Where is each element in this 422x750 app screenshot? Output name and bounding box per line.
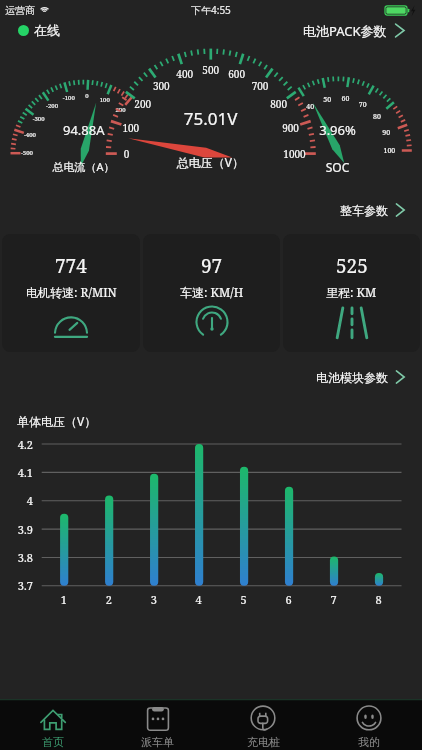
button[interactable]: 电池PACK参数: [303, 21, 406, 40]
staticText: 电机转速: R/MIN: [26, 284, 117, 300]
staticText: 车速: KM/H: [180, 284, 244, 300]
staticText: 首页: [42, 735, 64, 749]
staticText: 97: [201, 253, 223, 279]
button[interactable]: 电池模块参数: [316, 368, 406, 386]
button[interactable]: 97: [143, 234, 280, 352]
staticText: 运营商: [5, 4, 35, 17]
staticText: 下午4:55: [191, 3, 231, 17]
staticText: 充电桩: [247, 735, 280, 749]
button[interactable]: 整车参数: [340, 201, 406, 219]
button[interactable]: 774: [2, 234, 140, 352]
button[interactable]: 充电桩: [210, 699, 316, 750]
staticText: 电池模块参数: [316, 370, 388, 385]
button[interactable]: 525: [283, 234, 420, 352]
button[interactable]: 派车单: [105, 699, 210, 750]
staticText: 525: [336, 253, 368, 279]
staticText: 在线: [34, 22, 60, 38]
staticText: 派车单: [141, 735, 174, 749]
staticText: 里程: KM: [326, 284, 377, 300]
button[interactable]: 首页: [0, 699, 105, 750]
staticText: 774: [55, 253, 87, 279]
staticText: 我的: [358, 735, 380, 749]
staticText: 整车参数: [340, 203, 388, 218]
button[interactable]: 我的: [316, 699, 422, 750]
staticText: 电池PACK参数: [303, 22, 387, 40]
